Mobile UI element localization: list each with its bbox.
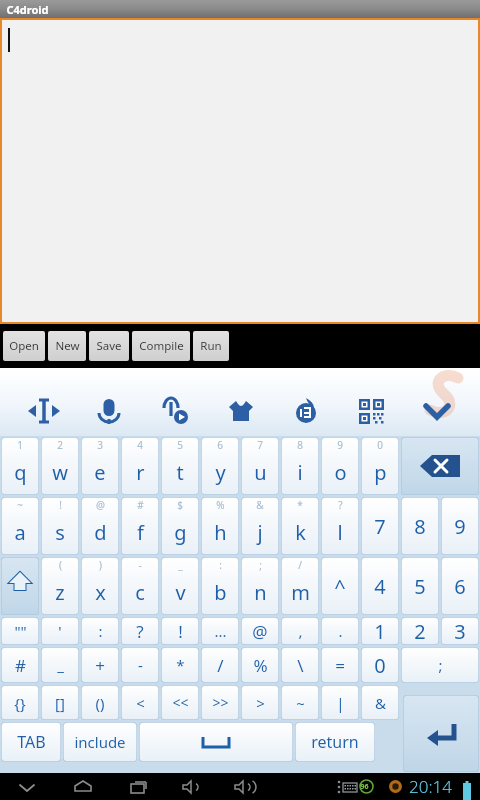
button[interactable]: ( bbox=[41, 557, 79, 615]
button[interactable]: ? bbox=[321, 497, 359, 555]
button[interactable]: Hide keyboard bbox=[415, 389, 459, 433]
button[interactable]: 7 bbox=[241, 437, 279, 495]
button[interactable]: # bbox=[121, 497, 159, 555]
button[interactable]: >> bbox=[201, 685, 239, 720]
staticText: i bbox=[297, 459, 303, 486]
button[interactable]: 0 bbox=[361, 647, 399, 683]
button[interactable]: > bbox=[241, 685, 279, 720]
button[interactable]: New bbox=[48, 331, 86, 361]
button[interactable]: ~ bbox=[1, 497, 39, 555]
button[interactable]: < bbox=[121, 685, 159, 720]
button[interactable]: ; bbox=[241, 557, 279, 615]
button[interactable]: ~ bbox=[281, 685, 319, 720]
button[interactable]: Dictionary bbox=[284, 389, 328, 433]
button[interactable]: 4 bbox=[361, 557, 399, 615]
button[interactable]: ! bbox=[41, 497, 79, 555]
button[interactable]: 1 bbox=[361, 617, 399, 645]
button[interactable]: ; bbox=[401, 647, 479, 683]
button[interactable]: ... bbox=[201, 617, 239, 645]
button[interactable]: Run bbox=[193, 331, 229, 361]
button[interactable]: 2 bbox=[41, 437, 79, 495]
button[interactable]: 2 bbox=[401, 617, 439, 645]
button[interactable]: 9 bbox=[321, 437, 359, 495]
staticText: \ bbox=[297, 654, 304, 677]
button[interactable]: [] bbox=[41, 685, 79, 720]
staticText: 7 bbox=[374, 513, 386, 540]
button[interactable]: ) bbox=[81, 557, 119, 615]
button[interactable] bbox=[1, 557, 39, 615]
button[interactable]: 3 bbox=[81, 437, 119, 495]
button[interactable]: * bbox=[161, 647, 199, 683]
button[interactable]: 4 bbox=[121, 437, 159, 495]
staticText: & bbox=[375, 693, 386, 713]
button[interactable] bbox=[401, 437, 479, 495]
button[interactable]: / bbox=[281, 557, 319, 615]
button[interactable]: - bbox=[121, 647, 159, 683]
button[interactable]: 9 bbox=[441, 497, 479, 555]
button[interactable]: _ bbox=[161, 557, 199, 615]
button[interactable]: % bbox=[201, 497, 239, 555]
button[interactable]: 7 bbox=[361, 497, 399, 555]
button[interactable]: ' bbox=[41, 617, 79, 645]
button[interactable]: return bbox=[295, 722, 375, 762]
button[interactable]: "" bbox=[1, 617, 39, 645]
button[interactable]: $ bbox=[161, 497, 199, 555]
button[interactable]: Save bbox=[89, 331, 129, 361]
button[interactable]: | bbox=[321, 685, 359, 720]
button[interactable]: ^ bbox=[321, 557, 359, 615]
button[interactable]: 3 bbox=[441, 617, 479, 645]
button[interactable]: ? bbox=[121, 617, 159, 645]
button[interactable]: include bbox=[63, 722, 137, 762]
button[interactable]: << bbox=[161, 685, 199, 720]
button[interactable]: {} bbox=[1, 685, 39, 720]
button[interactable]: = bbox=[321, 647, 359, 683]
button[interactable]: - bbox=[121, 557, 159, 615]
button[interactable]: () bbox=[81, 685, 119, 720]
staticText: ! bbox=[59, 498, 62, 512]
button[interactable]: ! bbox=[161, 617, 199, 645]
button[interactable]: 8 bbox=[401, 497, 439, 555]
staticText: w bbox=[52, 459, 68, 486]
button[interactable]: & bbox=[361, 685, 399, 720]
button[interactable]: \ bbox=[281, 647, 319, 683]
button[interactable] bbox=[139, 722, 293, 762]
button[interactable]: 5 bbox=[401, 557, 439, 615]
button[interactable]: Voice input bbox=[87, 389, 131, 433]
button[interactable]: @ bbox=[81, 497, 119, 555]
button[interactable]: 0 bbox=[361, 437, 399, 495]
button[interactable]: 6 bbox=[201, 437, 239, 495]
button[interactable]: . bbox=[321, 617, 359, 645]
button[interactable]: 1 bbox=[1, 437, 39, 495]
button[interactable]: % bbox=[241, 647, 279, 683]
button[interactable]: Back bbox=[14, 774, 40, 800]
button[interactable]: * bbox=[281, 497, 319, 555]
button[interactable]: Recent apps bbox=[126, 774, 152, 800]
button[interactable]: Move cursor bbox=[22, 389, 66, 433]
staticText: : bbox=[98, 621, 103, 641]
staticText: z bbox=[55, 579, 65, 606]
button[interactable]: TAB bbox=[1, 722, 61, 762]
button[interactable]: Open bbox=[3, 331, 45, 361]
button[interactable]: 5 bbox=[161, 437, 199, 495]
button[interactable]: , bbox=[281, 617, 319, 645]
button[interactable]: & bbox=[241, 497, 279, 555]
button[interactable]: Volume down bbox=[178, 774, 204, 800]
button[interactable]: @ bbox=[241, 617, 279, 645]
button[interactable]: _ bbox=[41, 647, 79, 683]
button[interactable]: # bbox=[1, 647, 39, 683]
button[interactable]: : bbox=[81, 617, 119, 645]
staticText: / bbox=[217, 654, 224, 677]
button[interactable]: 6 bbox=[441, 557, 479, 615]
button[interactable]: Scan QR code bbox=[349, 389, 393, 433]
button[interactable] bbox=[403, 695, 479, 772]
button[interactable]: / bbox=[201, 647, 239, 683]
button[interactable]: 8 bbox=[281, 437, 319, 495]
button[interactable]: Attachment bbox=[153, 389, 197, 433]
button[interactable]: Theme bbox=[218, 389, 262, 433]
button[interactable]: : bbox=[201, 557, 239, 615]
button[interactable]: + bbox=[81, 647, 119, 683]
staticText: ! bbox=[178, 620, 183, 643]
button[interactable]: Volume up bbox=[230, 774, 256, 800]
button[interactable]: Home bbox=[70, 774, 96, 800]
button[interactable]: Compile bbox=[132, 331, 190, 361]
